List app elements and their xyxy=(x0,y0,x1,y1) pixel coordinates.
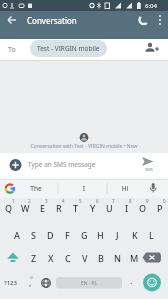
staticText: O xyxy=(139,202,147,214)
button[interactable]: Q xyxy=(0,197,17,219)
button[interactable]: P xyxy=(151,197,168,219)
staticText: 5 xyxy=(79,198,82,204)
button[interactable]: C xyxy=(59,247,76,268)
button[interactable]: K xyxy=(126,224,143,246)
button[interactable] xyxy=(38,275,54,291)
staticText: T xyxy=(73,202,79,214)
staticText: Conversation xyxy=(27,15,77,26)
button[interactable]: V xyxy=(76,247,93,268)
staticText: F xyxy=(65,229,70,241)
button[interactable]: EN · PL xyxy=(56,277,122,289)
staticText: Test - VIRGIN mobile xyxy=(37,44,100,53)
staticText: R xyxy=(56,202,62,214)
staticText: 6 xyxy=(96,198,99,204)
button[interactable]: B xyxy=(92,247,109,268)
button[interactable]: . xyxy=(130,274,133,286)
staticText: I xyxy=(125,202,129,214)
button[interactable] xyxy=(138,155,160,177)
staticText: K xyxy=(132,229,138,241)
button[interactable]: A xyxy=(8,224,25,246)
button[interactable]: M xyxy=(126,247,143,268)
staticText: 4 xyxy=(62,198,65,204)
button[interactable]: E xyxy=(34,197,51,219)
staticText: H xyxy=(97,229,104,241)
staticText: To xyxy=(8,45,16,55)
button[interactable]: I xyxy=(70,184,98,193)
button[interactable]: S xyxy=(25,224,42,246)
button[interactable]: Z xyxy=(25,247,42,268)
button[interactable]: Test - VIRGIN mobile xyxy=(30,40,107,57)
staticText: L xyxy=(149,229,154,241)
staticText: Y xyxy=(90,202,96,214)
staticText: Q xyxy=(5,202,13,214)
staticText: A xyxy=(14,229,20,241)
staticText: B xyxy=(98,252,104,264)
button[interactable]: F xyxy=(59,224,76,246)
button[interactable]: T xyxy=(67,197,84,219)
button[interactable]: The xyxy=(22,184,50,193)
staticText: D xyxy=(47,229,54,241)
staticText: C xyxy=(65,252,71,264)
button[interactable]: Type an SMS message xyxy=(28,160,96,169)
staticText: 8 xyxy=(129,198,132,204)
staticText: 1 xyxy=(12,198,15,204)
staticText: P xyxy=(157,202,163,214)
button[interactable]: W xyxy=(17,197,34,219)
button[interactable] xyxy=(4,12,20,28)
button[interactable]: X xyxy=(42,247,59,268)
staticText: EN · PL xyxy=(81,280,98,287)
staticText: 0 xyxy=(163,198,166,204)
button[interactable] xyxy=(146,181,161,196)
button[interactable]: H xyxy=(92,224,109,246)
staticText: Z xyxy=(31,252,37,264)
button[interactable] xyxy=(142,40,162,57)
staticText: 3 xyxy=(45,198,48,204)
staticText: Conversation with Test - VIRGIN mobile •… xyxy=(0,143,168,150)
button[interactable]: I xyxy=(118,197,135,219)
button[interactable]: ?123 xyxy=(4,279,17,287)
staticText: V xyxy=(82,252,88,264)
button[interactable]: U xyxy=(101,197,118,219)
staticText: 6:04 xyxy=(145,2,157,10)
button[interactable]: , xyxy=(29,276,32,288)
button[interactable] xyxy=(142,249,164,267)
button[interactable]: R xyxy=(50,197,67,219)
staticText: 2 xyxy=(28,198,31,204)
staticText: X xyxy=(48,252,54,264)
button[interactable]: J xyxy=(109,224,126,246)
button[interactable] xyxy=(143,273,162,292)
button[interactable]: Y xyxy=(84,197,101,219)
button[interactable] xyxy=(134,12,152,28)
staticText: M xyxy=(130,252,139,264)
button[interactable]: L xyxy=(143,224,160,246)
staticText: 7 xyxy=(112,198,115,204)
staticText: J xyxy=(116,229,119,241)
button[interactable] xyxy=(2,249,24,267)
staticText: N xyxy=(114,252,121,264)
button[interactable]: G xyxy=(76,224,93,246)
button[interactable]: O xyxy=(134,197,151,219)
staticText: G xyxy=(81,229,88,241)
staticText: S xyxy=(31,229,36,241)
button[interactable] xyxy=(154,12,166,28)
staticText: U xyxy=(106,202,113,214)
staticText: 9 xyxy=(146,198,149,204)
staticText: W xyxy=(21,202,30,214)
button[interactable] xyxy=(8,158,24,174)
button[interactable]: D xyxy=(42,224,59,246)
button[interactable]: Hi xyxy=(111,184,139,193)
staticText: SMS xyxy=(145,167,154,172)
staticText: E xyxy=(40,202,46,214)
button[interactable]: N xyxy=(109,247,126,268)
